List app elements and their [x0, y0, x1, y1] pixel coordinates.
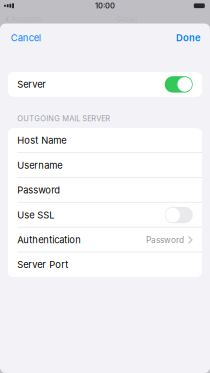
staticText: OUTGOING MAIL SERVER — [17, 114, 110, 123]
button[interactable]: Authentication — [8, 227, 202, 252]
button[interactable]: Cancel — [0, 23, 50, 52]
button[interactable]: Done — [167, 23, 210, 52]
staticText: Gmail — [116, 15, 137, 24]
staticText: Server — [17, 79, 46, 90]
staticText: Host Name — [17, 135, 66, 146]
staticText: Server Port — [17, 259, 68, 270]
staticText: Use SSL — [17, 209, 54, 221]
button[interactable]: Use SSL — [8, 203, 202, 227]
button[interactable]: Host Name — [8, 128, 202, 153]
staticText: Authentication — [17, 234, 81, 245]
button[interactable]: Password — [8, 178, 202, 203]
staticText: Cancel — [11, 32, 41, 43]
button[interactable]: Server Port — [8, 252, 202, 277]
staticText: Accounts — [11, 15, 42, 24]
button[interactable]: Username — [8, 153, 202, 178]
button[interactable]: Server — [8, 72, 202, 97]
staticText: Username — [17, 160, 62, 171]
staticText: Done — [176, 32, 201, 43]
staticText: Password — [17, 184, 60, 196]
staticText: 10:00 — [95, 1, 115, 10]
staticText: Password — [146, 235, 184, 245]
